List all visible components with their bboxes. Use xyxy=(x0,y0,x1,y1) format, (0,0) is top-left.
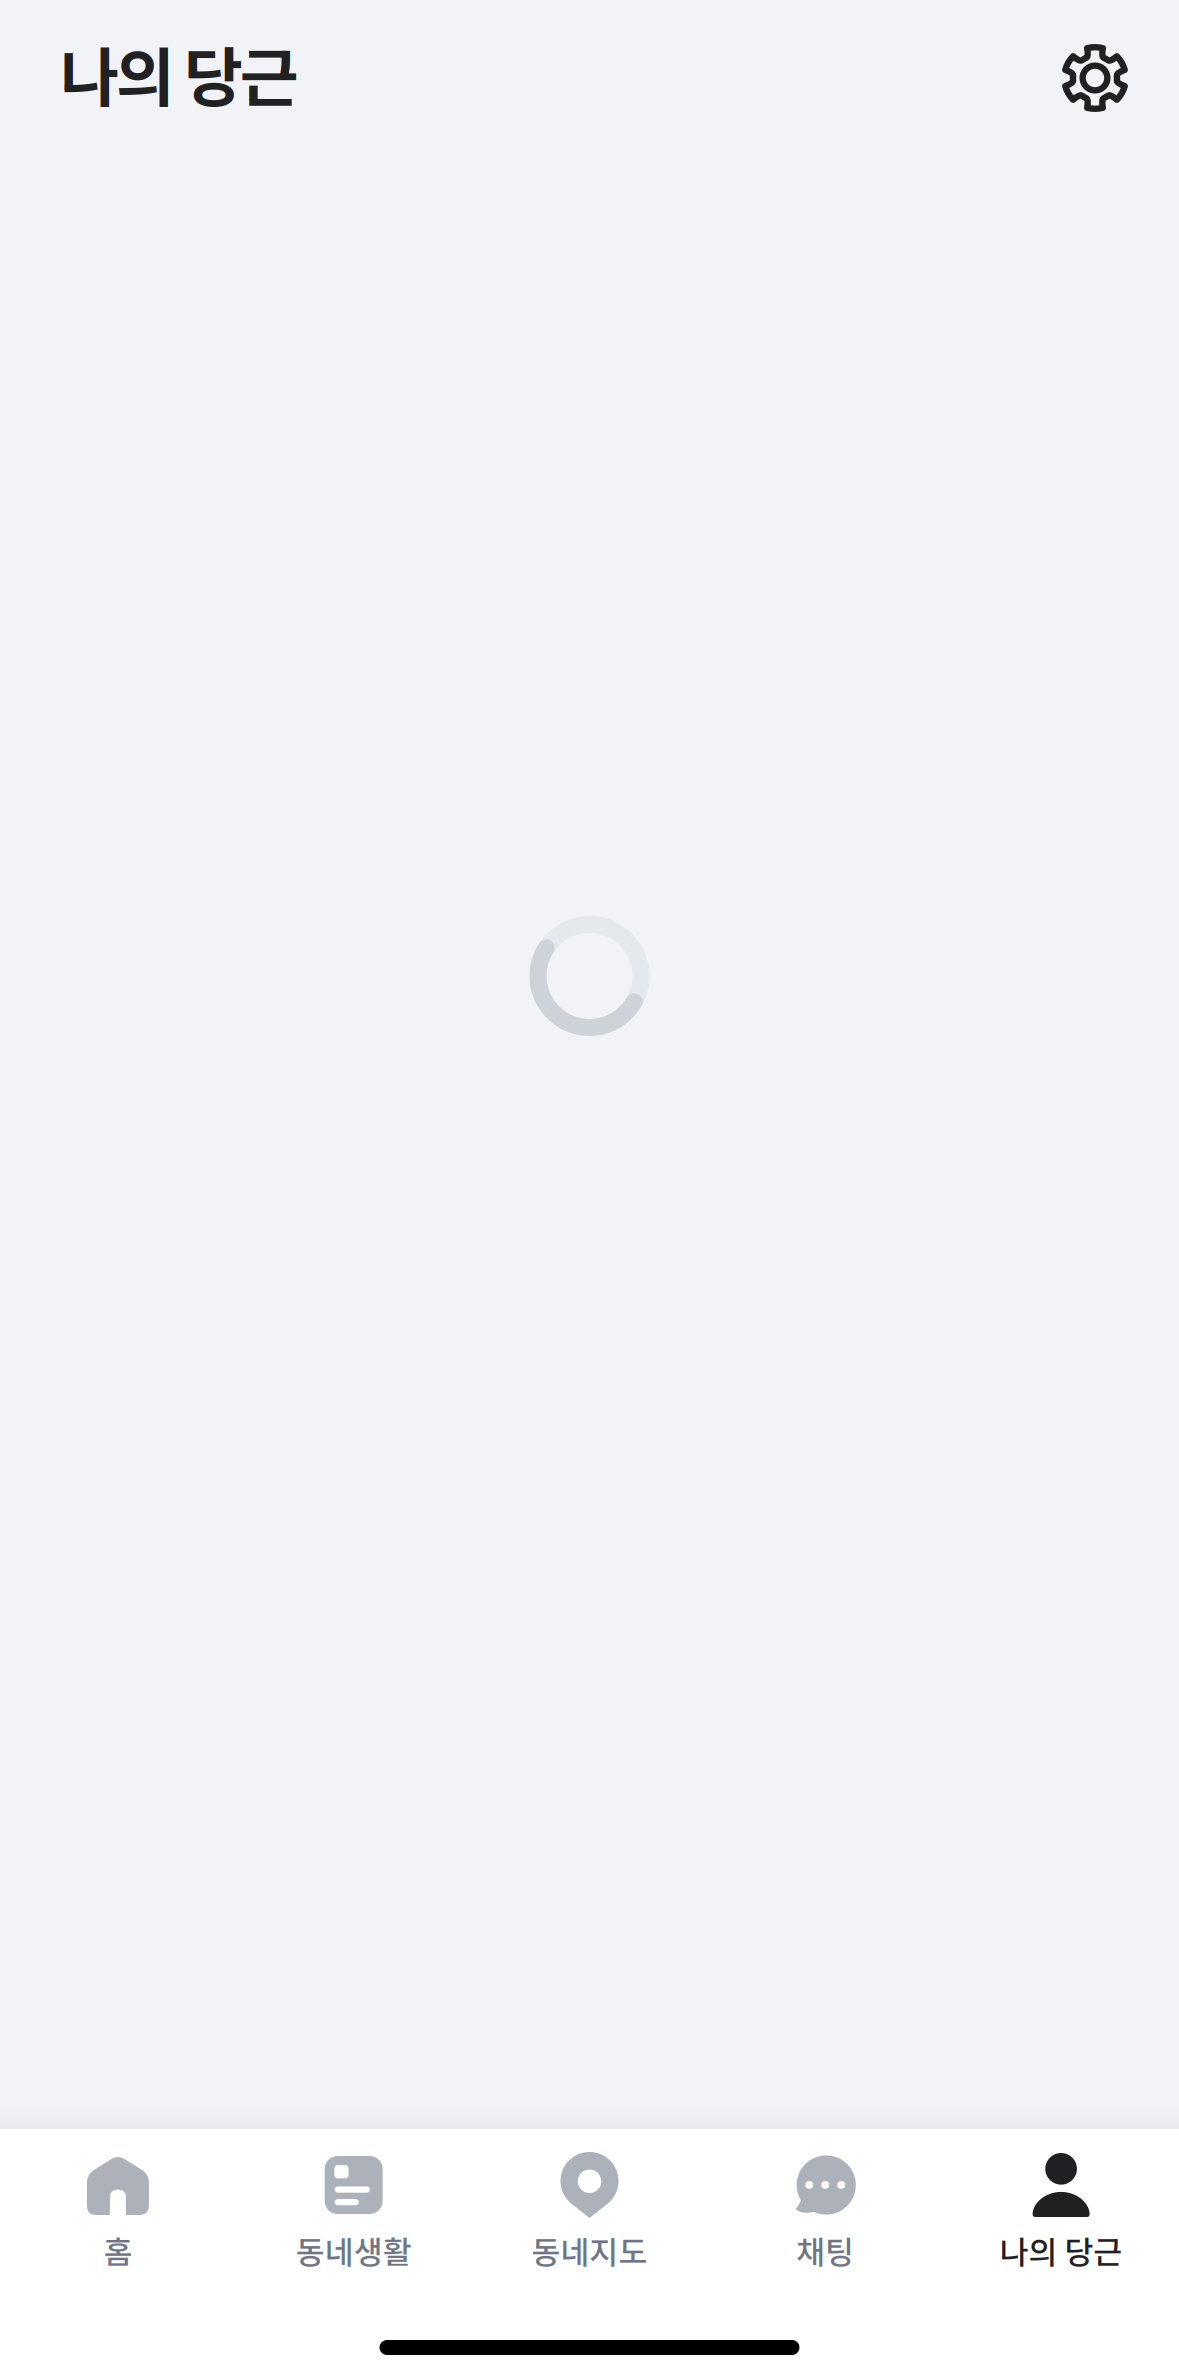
staticText: 나의 당근 xyxy=(60,27,299,119)
staticText: 동네생활 xyxy=(296,2227,412,2273)
staticText: 홈 xyxy=(103,2227,132,2273)
staticText: 동네지도 xyxy=(531,2227,647,2273)
button[interactable]: 설정 xyxy=(1061,41,1129,109)
button[interactable]: 채팅 xyxy=(707,2129,943,2272)
button[interactable]: 홈 xyxy=(0,2129,236,2272)
staticText: 나의 당근 xyxy=(1000,2227,1123,2273)
button[interactable]: 동네생활 xyxy=(236,2129,472,2272)
staticText: 채팅 xyxy=(796,2227,854,2273)
button[interactable]: 나의 당근 xyxy=(943,2129,1179,2272)
button[interactable]: 동네지도 xyxy=(472,2129,707,2272)
